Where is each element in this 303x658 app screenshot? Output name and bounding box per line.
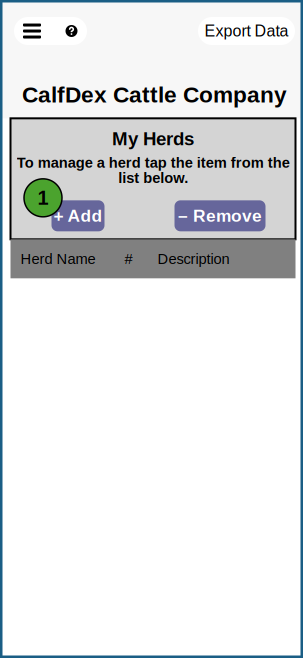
staticText: – Remove (178, 206, 262, 225)
staticText: + Add (53, 206, 102, 225)
staticText: CalfDex Cattle Company (22, 82, 287, 107)
staticText: My Herds (112, 128, 194, 149)
staticText: Description (157, 251, 229, 267)
button[interactable]: Export Data (198, 17, 295, 45)
button[interactable]: Menu and Help (14, 17, 87, 45)
button[interactable]: + Add (51, 200, 104, 231)
staticText: Herd Name (20, 251, 95, 267)
button[interactable]: – Remove (174, 200, 265, 231)
staticText: To manage a herd tap the item from the l… (16, 155, 289, 185)
staticText: 1 (37, 187, 48, 209)
staticText: Export Data (204, 22, 288, 40)
staticText: # (124, 251, 132, 267)
